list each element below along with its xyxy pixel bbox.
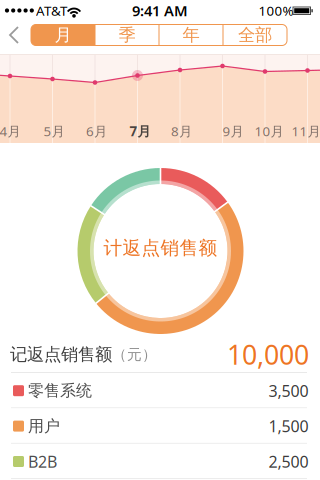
button[interactable]: Back (7, 24, 21, 46)
staticText: 100% (258, 2, 293, 19)
staticText: AT&T (36, 2, 67, 19)
button[interactable]: 月 (31, 24, 95, 45)
staticText: 3,500 (268, 380, 308, 401)
staticText: 6月 (86, 122, 107, 140)
staticText: B2B (28, 451, 57, 472)
staticText: 7月 (129, 122, 150, 140)
staticText: 5月 (43, 122, 64, 140)
button[interactable]: 用户 (0, 408, 320, 444)
staticText: 计返点销售额 (103, 236, 217, 259)
staticText: 8月 (171, 122, 192, 140)
staticText: 9:41 AM (132, 1, 188, 20)
staticText: （元） (112, 345, 157, 363)
staticText: 季 (118, 24, 135, 46)
button[interactable]: 全部 (223, 24, 287, 45)
staticText: 9月 (222, 122, 243, 140)
staticText: 10,000 (227, 337, 309, 372)
staticText: 2,500 (268, 451, 308, 472)
button[interactable]: B2B (0, 444, 320, 479)
button[interactable]: 年 (159, 24, 223, 45)
staticText: 零售系统 (28, 381, 92, 401)
button[interactable]: 季 (95, 24, 159, 45)
staticText: 记返点销售额 (10, 344, 112, 365)
button[interactable]: 零售系统 (0, 373, 320, 408)
staticText: 1,500 (268, 415, 308, 437)
staticText: 用户 (28, 416, 60, 436)
staticText: 4月 (0, 122, 20, 140)
staticText: 月 (54, 24, 71, 46)
staticText: 年 (182, 24, 199, 46)
staticText: 10月 (254, 122, 283, 140)
staticText: 11月 (291, 122, 320, 140)
staticText: 全部 (238, 24, 272, 46)
